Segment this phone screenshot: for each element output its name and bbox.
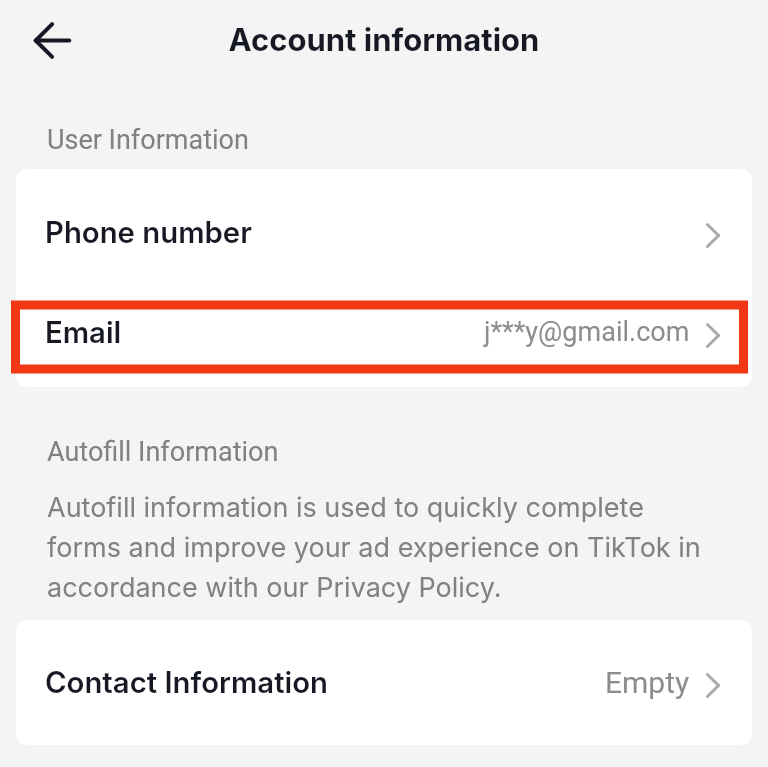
staticText: Phone number: [45, 215, 252, 250]
staticText: j***y@gmail.com: [484, 316, 690, 348]
button[interactable]: Email: [16, 277, 752, 387]
staticText: Empty: [605, 665, 690, 700]
staticText: Autofill information is used to quickly …: [47, 491, 713, 604]
staticText: Contact Information: [45, 665, 328, 700]
button[interactable]: Phone number: [16, 169, 752, 277]
staticText: User Information: [47, 124, 249, 156]
button[interactable]: Back: [20, 18, 84, 62]
staticText: Account information: [0, 21, 768, 59]
staticText: Email: [45, 315, 122, 350]
button[interactable]: Contact Information: [16, 620, 752, 745]
staticText: Autofill Information: [47, 436, 279, 468]
